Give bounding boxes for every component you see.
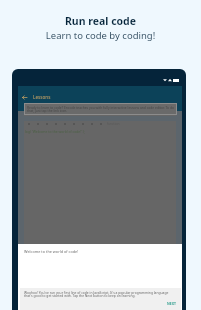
- button[interactable]: Quote: [42, 120, 51, 128]
- staticText: Ready to learn to code? Encode teaches y…: [27, 105, 175, 113]
- button[interactable]: Brackets: [60, 120, 69, 128]
- button[interactable]: NEXT: [165, 300, 178, 307]
- button[interactable]: Tag: [51, 120, 60, 128]
- staticText: log( 'Welcome to the world of code!' );: [25, 129, 85, 134]
- button[interactable]: Braces: [69, 120, 78, 128]
- staticText: Welcome to the world of code!: [24, 249, 79, 254]
- staticText: Learn to code by coding!: [0, 29, 201, 42]
- staticText: Woohoo! You've run your first line of co…: [24, 290, 176, 298]
- button[interactable]: Var: [96, 120, 105, 128]
- button[interactable]: Redo: [33, 120, 42, 128]
- button[interactable]: Semicolon: [78, 120, 87, 128]
- button[interactable]: Function: [105, 120, 122, 128]
- button[interactable]: Back: [20, 93, 28, 101]
- button[interactable]: Undo: [24, 120, 33, 128]
- button[interactable]: Equals: [87, 120, 96, 128]
- staticText: Lessons: [33, 94, 51, 100]
- staticText: NEXT: [167, 301, 176, 306]
- staticText: Run real code: [0, 14, 201, 28]
